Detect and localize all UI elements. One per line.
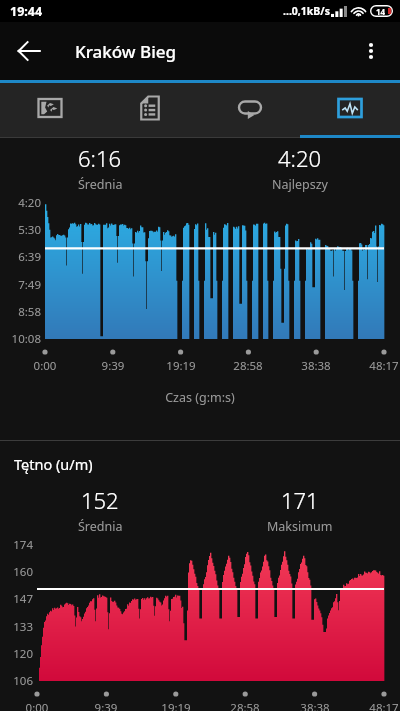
staticText: 48:17	[350, 358, 400, 374]
staticText: Kraków Bieg	[75, 40, 177, 63]
staticText: 38:38	[281, 700, 349, 711]
staticText: 133	[0, 619, 33, 635]
staticText: 9:39	[79, 358, 147, 374]
staticText: 5:30	[0, 222, 41, 238]
staticText: 10:08	[0, 331, 41, 347]
staticText: 0:00	[11, 358, 79, 374]
button[interactable]: More options	[342, 22, 400, 80]
staticText: 7:49	[0, 277, 41, 293]
staticText: 147	[0, 591, 33, 607]
staticText: 152	[81, 485, 119, 515]
staticText: 0:00	[3, 700, 71, 711]
button[interactable]: Map	[0, 83, 100, 138]
staticText: 160	[0, 564, 33, 580]
staticText: Średnia	[78, 518, 123, 535]
staticText: 174	[0, 537, 33, 553]
staticText: 4:20	[278, 143, 322, 173]
staticText: 48:17	[350, 700, 400, 711]
staticText: 28:58	[214, 358, 282, 374]
staticText: 28:58	[211, 700, 279, 711]
staticText: Najlepszy	[272, 176, 328, 193]
button[interactable]: Charts	[300, 83, 400, 138]
staticText: 171	[281, 485, 319, 515]
staticText: 4:20	[0, 195, 41, 211]
staticText: 120	[0, 646, 33, 662]
staticText: 106	[0, 673, 33, 689]
staticText: 19:19	[142, 700, 210, 711]
staticText: Maksimum	[267, 518, 333, 535]
staticText: 8:58	[0, 304, 41, 320]
staticText: Czas (g:m:s)	[0, 389, 400, 406]
staticText: 14	[376, 6, 386, 17]
staticText: Średnia	[78, 176, 123, 193]
staticText: ...0,1kB/s	[283, 4, 330, 18]
staticText: Tętno (u/m)	[14, 454, 93, 474]
staticText: 19:44	[10, 3, 43, 20]
staticText: 38:38	[282, 358, 350, 374]
staticText: 9:39	[72, 700, 140, 711]
button[interactable]: Details	[100, 83, 200, 138]
staticText: 19:19	[147, 358, 215, 374]
button[interactable]: Back	[0, 22, 58, 80]
staticText: 6:16	[78, 143, 122, 173]
button[interactable]: Laps	[200, 83, 300, 138]
staticText: 6:39	[0, 249, 41, 265]
